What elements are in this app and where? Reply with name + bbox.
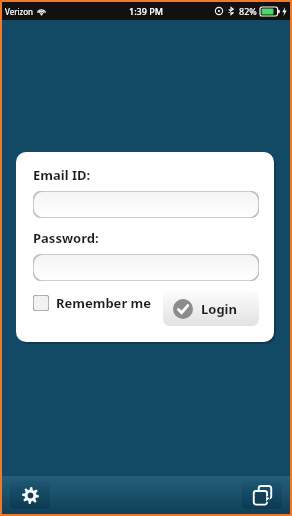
button[interactable]: Remember me xyxy=(33,291,156,312)
staticText: Email ID: xyxy=(33,166,91,184)
staticText: Password: xyxy=(33,229,99,247)
staticText: Login xyxy=(201,300,237,318)
staticText: Verizon xyxy=(5,6,34,17)
button[interactable] xyxy=(33,191,259,218)
button[interactable]: Login xyxy=(163,291,259,326)
staticText: 82% xyxy=(239,5,257,17)
button[interactable]: Tabs, 2 open xyxy=(242,481,282,509)
staticText: 2 xyxy=(266,493,271,504)
button[interactable] xyxy=(33,254,259,281)
button[interactable]: Settings xyxy=(10,481,50,509)
staticText: Remember me xyxy=(56,294,152,312)
staticText: 1:39 PM xyxy=(129,5,163,17)
